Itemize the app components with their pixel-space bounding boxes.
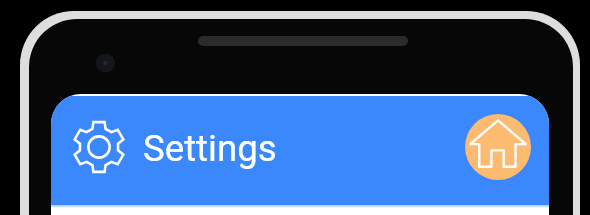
button[interactable]: Settings: [68, 116, 130, 178]
staticText: Settings: [143, 127, 277, 170]
button[interactable]: Home: [465, 114, 531, 180]
